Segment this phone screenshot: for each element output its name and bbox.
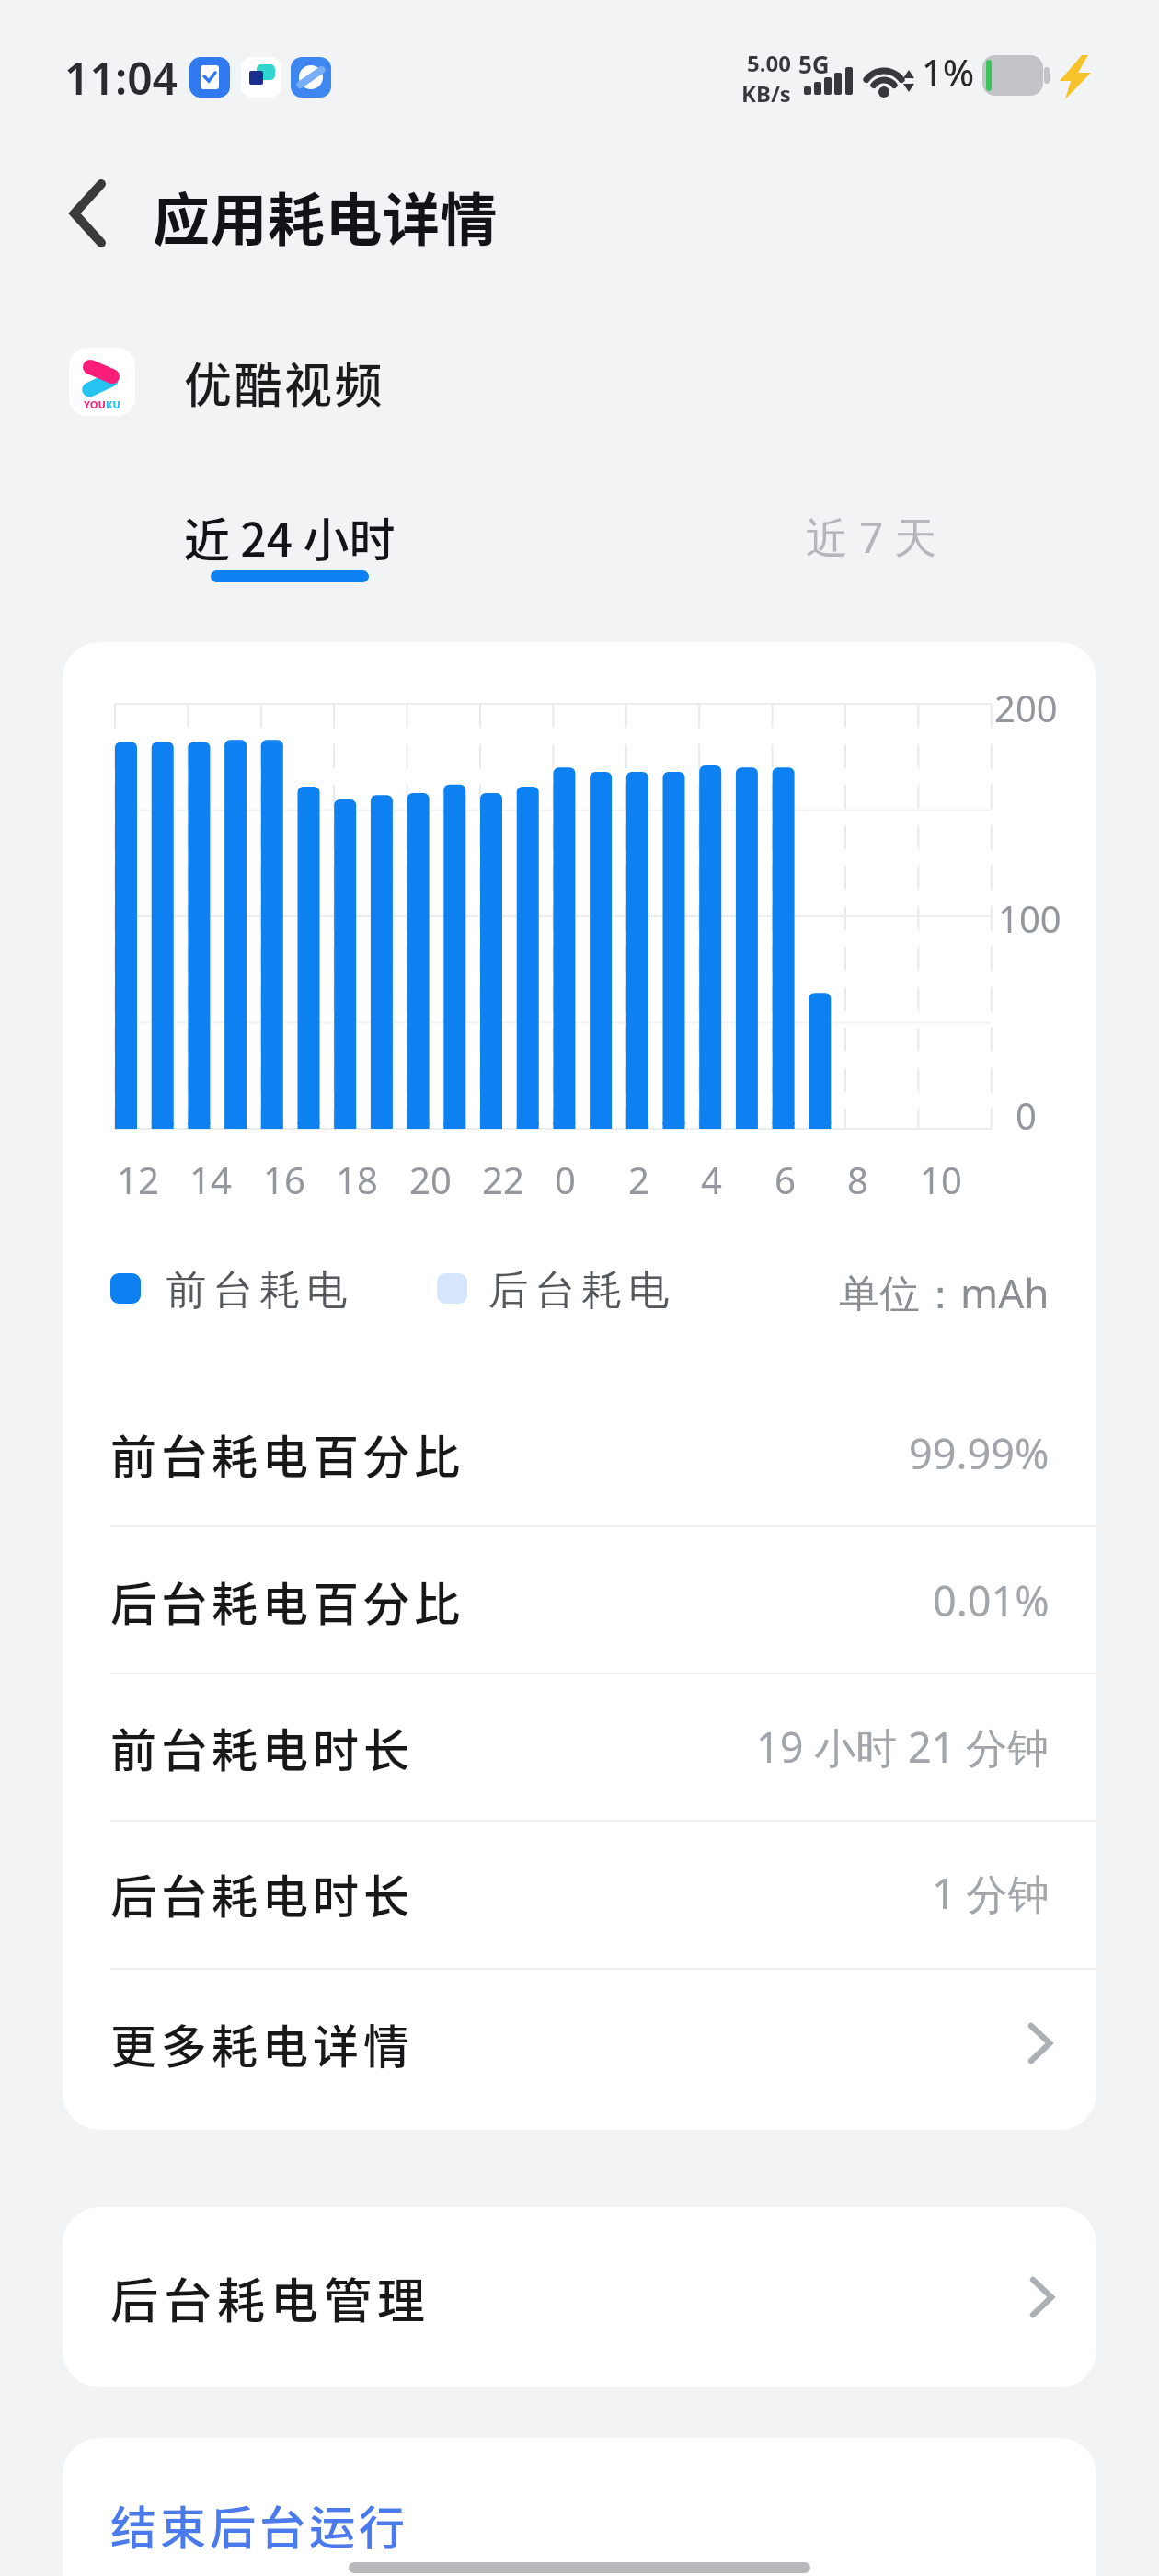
staticText: 更多耗电详情 (110, 2010, 414, 2076)
staticText: KB/s (741, 78, 791, 107)
staticText: 应用耗电详情 (153, 175, 499, 252)
staticText: 99.99% (909, 1425, 1050, 1481)
staticText: 近 24 小时 (184, 503, 396, 569)
staticText: 100 (998, 893, 1061, 939)
staticText: 1 分钟 (932, 1865, 1050, 1921)
staticText: 近 7 天 (806, 508, 937, 566)
staticText: 5G (798, 48, 830, 75)
staticText: 16 (263, 1155, 305, 1201)
staticText: 单位：mAh (839, 1265, 1050, 1311)
staticText: 4 (701, 1155, 722, 1201)
button[interactable] (52, 175, 125, 252)
staticText: 2 (628, 1155, 649, 1201)
staticText: 12 (117, 1155, 159, 1201)
staticText: 优酷视频 (184, 348, 385, 416)
staticText: 8 (847, 1155, 868, 1201)
staticText: 19 小时 21 分钟 (756, 1719, 1050, 1775)
staticText: 前台耗电 (163, 1265, 350, 1311)
button[interactable]: 更多耗电详情 (63, 1970, 1096, 2117)
staticText: 14 (189, 1155, 232, 1201)
staticText: 200 (994, 683, 1058, 729)
staticText: 1% (922, 47, 974, 97)
staticText: 后台耗电时长 (110, 1860, 414, 1926)
button[interactable]: 近 24 小时 (175, 501, 405, 584)
staticText: KU (106, 397, 120, 411)
button[interactable]: 近 7 天 (791, 501, 952, 571)
staticText: 后台耗电 (485, 1265, 672, 1311)
staticText: 后台耗电百分比 (110, 1568, 465, 1634)
staticText: 18 (336, 1155, 378, 1201)
staticText: 0.01% (933, 1572, 1050, 1628)
staticText: 后台耗电管理 (110, 2263, 431, 2332)
staticText: 20 (409, 1155, 452, 1201)
staticText: 0 (555, 1155, 576, 1201)
staticText: 前台耗电百分比 (110, 1420, 465, 1487)
button[interactable]: 结束后台运行 (63, 2438, 1096, 2576)
staticText: 6 (775, 1155, 796, 1201)
staticText: YOU (84, 397, 106, 411)
staticText: 前台耗电时长 (110, 1714, 414, 1780)
staticText: 22 (482, 1155, 524, 1201)
button[interactable]: 后台耗电管理 (63, 2207, 1096, 2387)
staticText: 0 (1016, 1090, 1037, 1136)
staticText: 结束后台运行 (110, 2491, 408, 2558)
staticText: 5.00 (747, 48, 791, 78)
staticText: 11:04 (64, 48, 178, 107)
staticText: 10 (920, 1155, 962, 1201)
